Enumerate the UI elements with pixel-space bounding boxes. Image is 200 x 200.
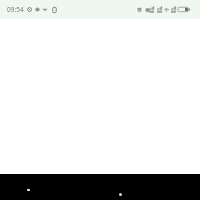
- button[interactable]: Home: [119, 193, 122, 196]
- button[interactable]: Back: [27, 189, 30, 191]
- staticText: 09:54: [7, 5, 24, 14]
